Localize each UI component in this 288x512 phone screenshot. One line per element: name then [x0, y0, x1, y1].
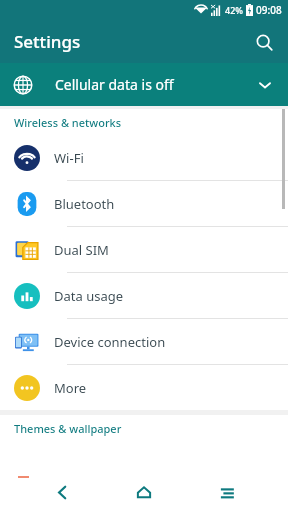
button[interactable]: Wi-Fi — [0, 135, 288, 180]
button[interactable]: Back — [41, 473, 83, 512]
staticText: Bluetooth — [54, 195, 115, 213]
staticText: Device connection — [54, 333, 166, 351]
staticText: More — [54, 379, 87, 397]
staticText: Settings — [14, 30, 81, 53]
button[interactable]: Cellular data is off — [0, 63, 288, 106]
button[interactable]: Home — [123, 473, 165, 512]
button[interactable]: Device connection — [0, 319, 288, 364]
staticText: Data usage — [54, 287, 124, 305]
button[interactable]: Data usage — [0, 273, 288, 318]
staticText: 42% — [225, 4, 243, 16]
button[interactable]: Recent apps — [206, 473, 248, 512]
staticText: 09:08 — [256, 3, 282, 17]
button[interactable]: Dual SIM — [0, 227, 288, 272]
staticText: Wireless & networks — [14, 115, 122, 130]
button[interactable]: Search — [248, 26, 280, 58]
button[interactable]: More — [0, 365, 288, 410]
staticText: Wi-Fi — [54, 149, 84, 167]
staticText: Dual SIM — [54, 241, 109, 259]
staticText: Cellular data is off — [55, 75, 174, 94]
button[interactable]: Bluetooth — [0, 181, 288, 226]
staticText: Themes & wallpaper — [14, 421, 122, 436]
